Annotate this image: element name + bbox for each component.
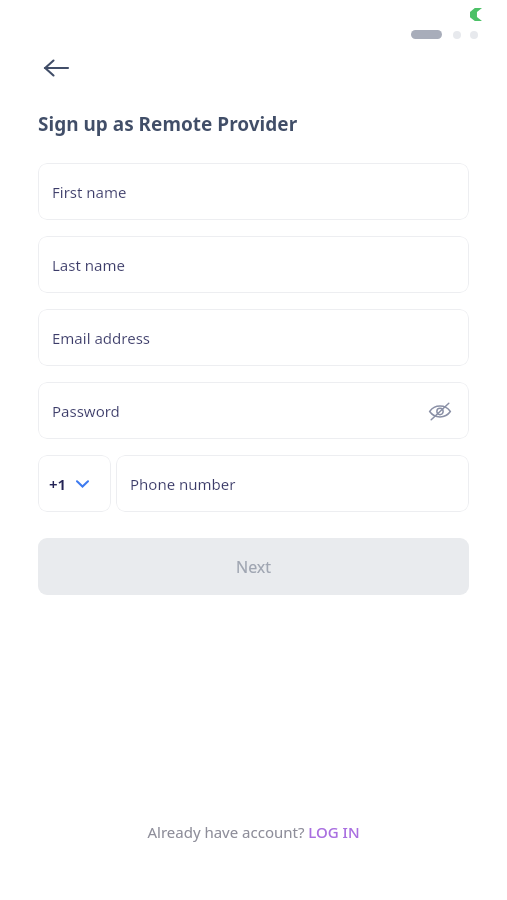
staticText: Sign up as Remote Provider [38, 111, 298, 137]
button[interactable]: Last name [38, 236, 469, 293]
button[interactable]: Next [38, 538, 469, 595]
staticText: First name [52, 182, 127, 202]
button[interactable]: Phone number [116, 455, 469, 512]
staticText: Password [52, 401, 120, 421]
button[interactable]: Show password [425, 396, 455, 426]
button[interactable]: Already have account? LOG IN [40, 822, 467, 842]
button[interactable]: Country code +1 [38, 455, 111, 512]
staticText: Last name [52, 255, 125, 275]
staticText: +1 [49, 474, 67, 494]
staticText: Already have account? LOG IN [147, 822, 360, 842]
staticText: Phone number [130, 474, 236, 494]
staticText: Email address [52, 328, 151, 348]
button[interactable]: First name [38, 163, 469, 220]
staticText: Next [236, 556, 272, 578]
button[interactable]: Back [38, 50, 74, 86]
button[interactable]: Email address [38, 309, 469, 366]
button[interactable]: Password [38, 382, 469, 439]
